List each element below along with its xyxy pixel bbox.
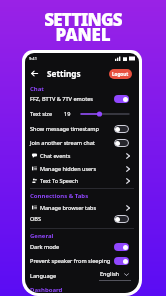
button[interactable]: Back (29, 68, 40, 79)
button[interactable]: Language (25, 270, 139, 281)
staticText: Chat events (40, 152, 71, 159)
staticText: Text To Speech (40, 177, 79, 184)
staticText: OBS (30, 215, 42, 223)
staticText: Settings (47, 68, 81, 79)
staticText: Manage browser tabs (40, 204, 97, 211)
button[interactable]: Join another stream chat (25, 137, 139, 148)
staticText: Prevent speaker from sleeping (30, 257, 111, 265)
staticText: Logout (112, 71, 129, 77)
button[interactable]: Dark mode (25, 241, 139, 252)
staticText: English (100, 270, 120, 278)
button[interactable]: Show message timestamp (25, 123, 139, 134)
staticText: Chat (30, 85, 44, 93)
staticText: Language (30, 272, 57, 280)
staticText: 9:41 (29, 56, 37, 61)
staticText: Dark mode (30, 243, 60, 251)
staticText: 19 (64, 110, 71, 118)
staticText: SETTINGS (44, 8, 122, 31)
staticText: Dashboard (30, 286, 63, 293)
staticText: FFZ, BTTV & 7TV emotes (30, 95, 94, 103)
button[interactable]: Manage browser tabs (25, 202, 139, 213)
button[interactable]: Prevent speaker from sleeping (25, 255, 139, 266)
staticText: PANEL (55, 23, 111, 46)
button[interactable]: Logout (109, 69, 132, 79)
staticText: Show message timestamp (30, 125, 99, 133)
button[interactable]: Chat events (25, 150, 139, 161)
staticText: General (30, 232, 54, 240)
staticText: Join another stream chat (30, 139, 95, 147)
button[interactable]: Text To Speech (25, 175, 139, 186)
button[interactable]: Manage hidden users (25, 163, 139, 174)
staticText: Text size (30, 110, 53, 118)
staticText: Manage hidden users (40, 165, 97, 172)
staticText: Connections & Tabs (30, 192, 89, 200)
button[interactable]: OBS (25, 213, 139, 224)
button[interactable]: FFZ, BTTV & 7TV emotes (25, 93, 139, 104)
